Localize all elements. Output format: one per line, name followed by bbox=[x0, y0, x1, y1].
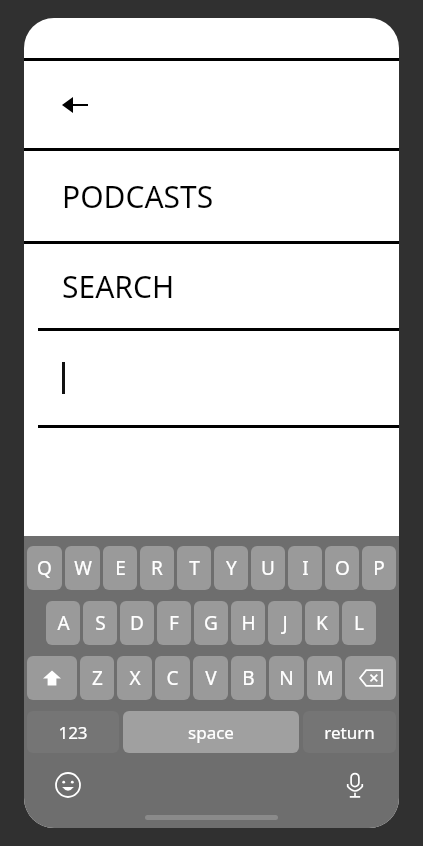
staticText: 123 bbox=[58, 721, 88, 744]
button[interactable]: S bbox=[83, 601, 117, 645]
staticText: Z bbox=[92, 665, 103, 691]
staticText: SEARCH bbox=[62, 266, 175, 307]
button[interactable]: O bbox=[325, 546, 359, 590]
button[interactable]: V bbox=[193, 656, 228, 700]
button[interactable]: F bbox=[157, 601, 191, 645]
staticText: R bbox=[151, 555, 163, 581]
staticText: U bbox=[261, 555, 275, 581]
staticText: H bbox=[241, 610, 256, 636]
button[interactable]: N bbox=[269, 656, 304, 700]
staticText: G bbox=[204, 610, 218, 636]
button[interactable]: Emoji bbox=[46, 763, 90, 807]
staticText: L bbox=[354, 610, 364, 636]
button[interactable]: Back bbox=[24, 61, 399, 148]
button[interactable]: H bbox=[231, 601, 265, 645]
staticText: return bbox=[324, 721, 375, 744]
button[interactable]: Backspace bbox=[345, 656, 396, 700]
button[interactable]: U bbox=[251, 546, 285, 590]
button[interactable] bbox=[24, 331, 399, 425]
staticText: PODCASTS bbox=[62, 176, 214, 217]
staticText: C bbox=[166, 665, 179, 691]
staticText: V bbox=[205, 665, 217, 691]
button[interactable]: Y bbox=[214, 546, 248, 590]
button[interactable]: R bbox=[140, 546, 174, 590]
button[interactable]: X bbox=[117, 656, 152, 700]
staticText: W bbox=[74, 555, 92, 581]
button[interactable]: 123 bbox=[27, 711, 119, 753]
staticText: Q bbox=[37, 555, 52, 581]
button[interactable]: A bbox=[46, 601, 80, 645]
staticText: T bbox=[189, 555, 200, 581]
button[interactable]: L bbox=[342, 601, 376, 645]
staticText: space bbox=[188, 721, 234, 744]
button[interactable]: Voice input bbox=[333, 763, 377, 807]
staticText: F bbox=[169, 610, 179, 636]
staticText: P bbox=[373, 555, 385, 581]
staticText: O bbox=[335, 555, 350, 581]
button[interactable]: Shift bbox=[27, 656, 77, 700]
button[interactable]: return bbox=[303, 711, 396, 753]
staticText: A bbox=[57, 610, 70, 636]
staticText: D bbox=[130, 610, 144, 636]
staticText: Y bbox=[226, 555, 237, 581]
button[interactable]: P bbox=[362, 546, 396, 590]
button[interactable]: E bbox=[103, 546, 137, 590]
button[interactable]: J bbox=[268, 601, 302, 645]
button[interactable]: I bbox=[288, 546, 322, 590]
button[interactable]: Z bbox=[80, 656, 114, 700]
staticText: I bbox=[302, 555, 309, 581]
button[interactable]: space bbox=[123, 711, 299, 753]
staticText: M bbox=[316, 665, 334, 691]
staticText: S bbox=[95, 610, 106, 636]
button[interactable]: Q bbox=[27, 546, 62, 590]
staticText: N bbox=[279, 665, 294, 691]
button[interactable]: T bbox=[177, 546, 211, 590]
staticText: E bbox=[115, 555, 126, 581]
button[interactable]: C bbox=[155, 656, 190, 700]
button[interactable]: M bbox=[307, 656, 342, 700]
button[interactable]: W bbox=[65, 546, 100, 590]
staticText: B bbox=[242, 665, 255, 691]
button[interactable]: K bbox=[305, 601, 339, 645]
button[interactable]: D bbox=[120, 601, 154, 645]
staticText: K bbox=[316, 610, 328, 636]
button[interactable]: B bbox=[231, 656, 266, 700]
staticText: J bbox=[282, 610, 288, 636]
button[interactable]: G bbox=[194, 601, 228, 645]
staticText: X bbox=[129, 665, 141, 691]
button[interactable]: PODCASTS bbox=[24, 151, 399, 241]
